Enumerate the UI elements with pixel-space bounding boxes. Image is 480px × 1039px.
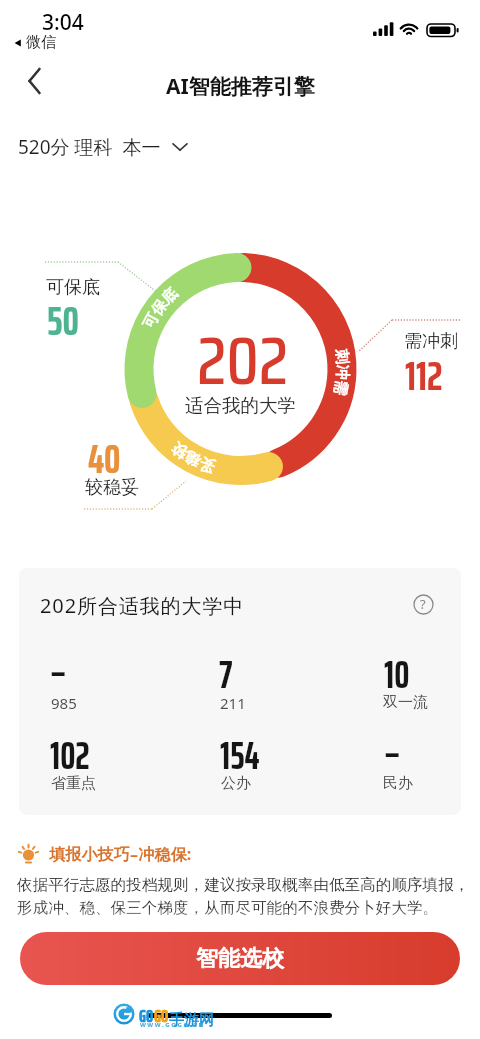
staticText: ?: [420, 595, 426, 613]
staticText: GO: [154, 1003, 169, 1030]
staticText: 可保底: [46, 276, 100, 299]
staticText: 102: [50, 726, 90, 786]
staticText: 202: [197, 308, 289, 413]
staticText: 112: [405, 343, 443, 408]
staticText: 211: [220, 693, 246, 713]
button[interactable]: 520分 理科 本一: [18, 129, 190, 165]
staticText: 双一流: [383, 693, 428, 712]
staticText: –: [384, 724, 401, 784]
staticText: 依据平行志愿的投档规则，建议按录取概率由低至高的顺序填报，: [17, 875, 470, 895]
staticText: 手游网: [169, 1011, 214, 1030]
staticText: W W W . G O G O . C N: [140, 1021, 204, 1029]
staticText: 民办: [383, 774, 413, 793]
staticText: 985: [51, 693, 77, 713]
staticText: 公办: [221, 774, 251, 793]
staticText: –: [50, 643, 67, 703]
button[interactable]: 智能选校: [20, 932, 460, 985]
staticText: 154: [220, 726, 260, 786]
staticText: 520分 理科 本一: [18, 134, 161, 160]
staticText: 40: [88, 426, 121, 491]
staticText: 7: [219, 645, 233, 705]
staticText: 202所合适我的大学中: [40, 592, 245, 619]
staticText: GO: [139, 1003, 154, 1030]
staticText: 需冲刺: [404, 330, 458, 353]
button[interactable]: Back: [8, 58, 62, 104]
staticText: 较稳妥: [85, 476, 139, 499]
staticText: 省重点: [51, 774, 96, 793]
staticText: 填报小技巧–冲稳保:: [49, 843, 192, 865]
staticText: 智能选校: [196, 945, 284, 973]
staticText: 50: [47, 288, 79, 353]
button[interactable]: Help: [409, 590, 437, 618]
staticText: 形成冲、稳、保三个梯度，从而尽可能的不浪费分卜好大学。: [17, 898, 439, 918]
staticText: 3:04: [42, 8, 84, 37]
staticText: 微信: [26, 33, 56, 52]
staticText: AI智能推荐引擎: [166, 72, 315, 101]
staticText: 适合我的大学: [185, 394, 296, 417]
staticText: 10: [384, 645, 410, 705]
